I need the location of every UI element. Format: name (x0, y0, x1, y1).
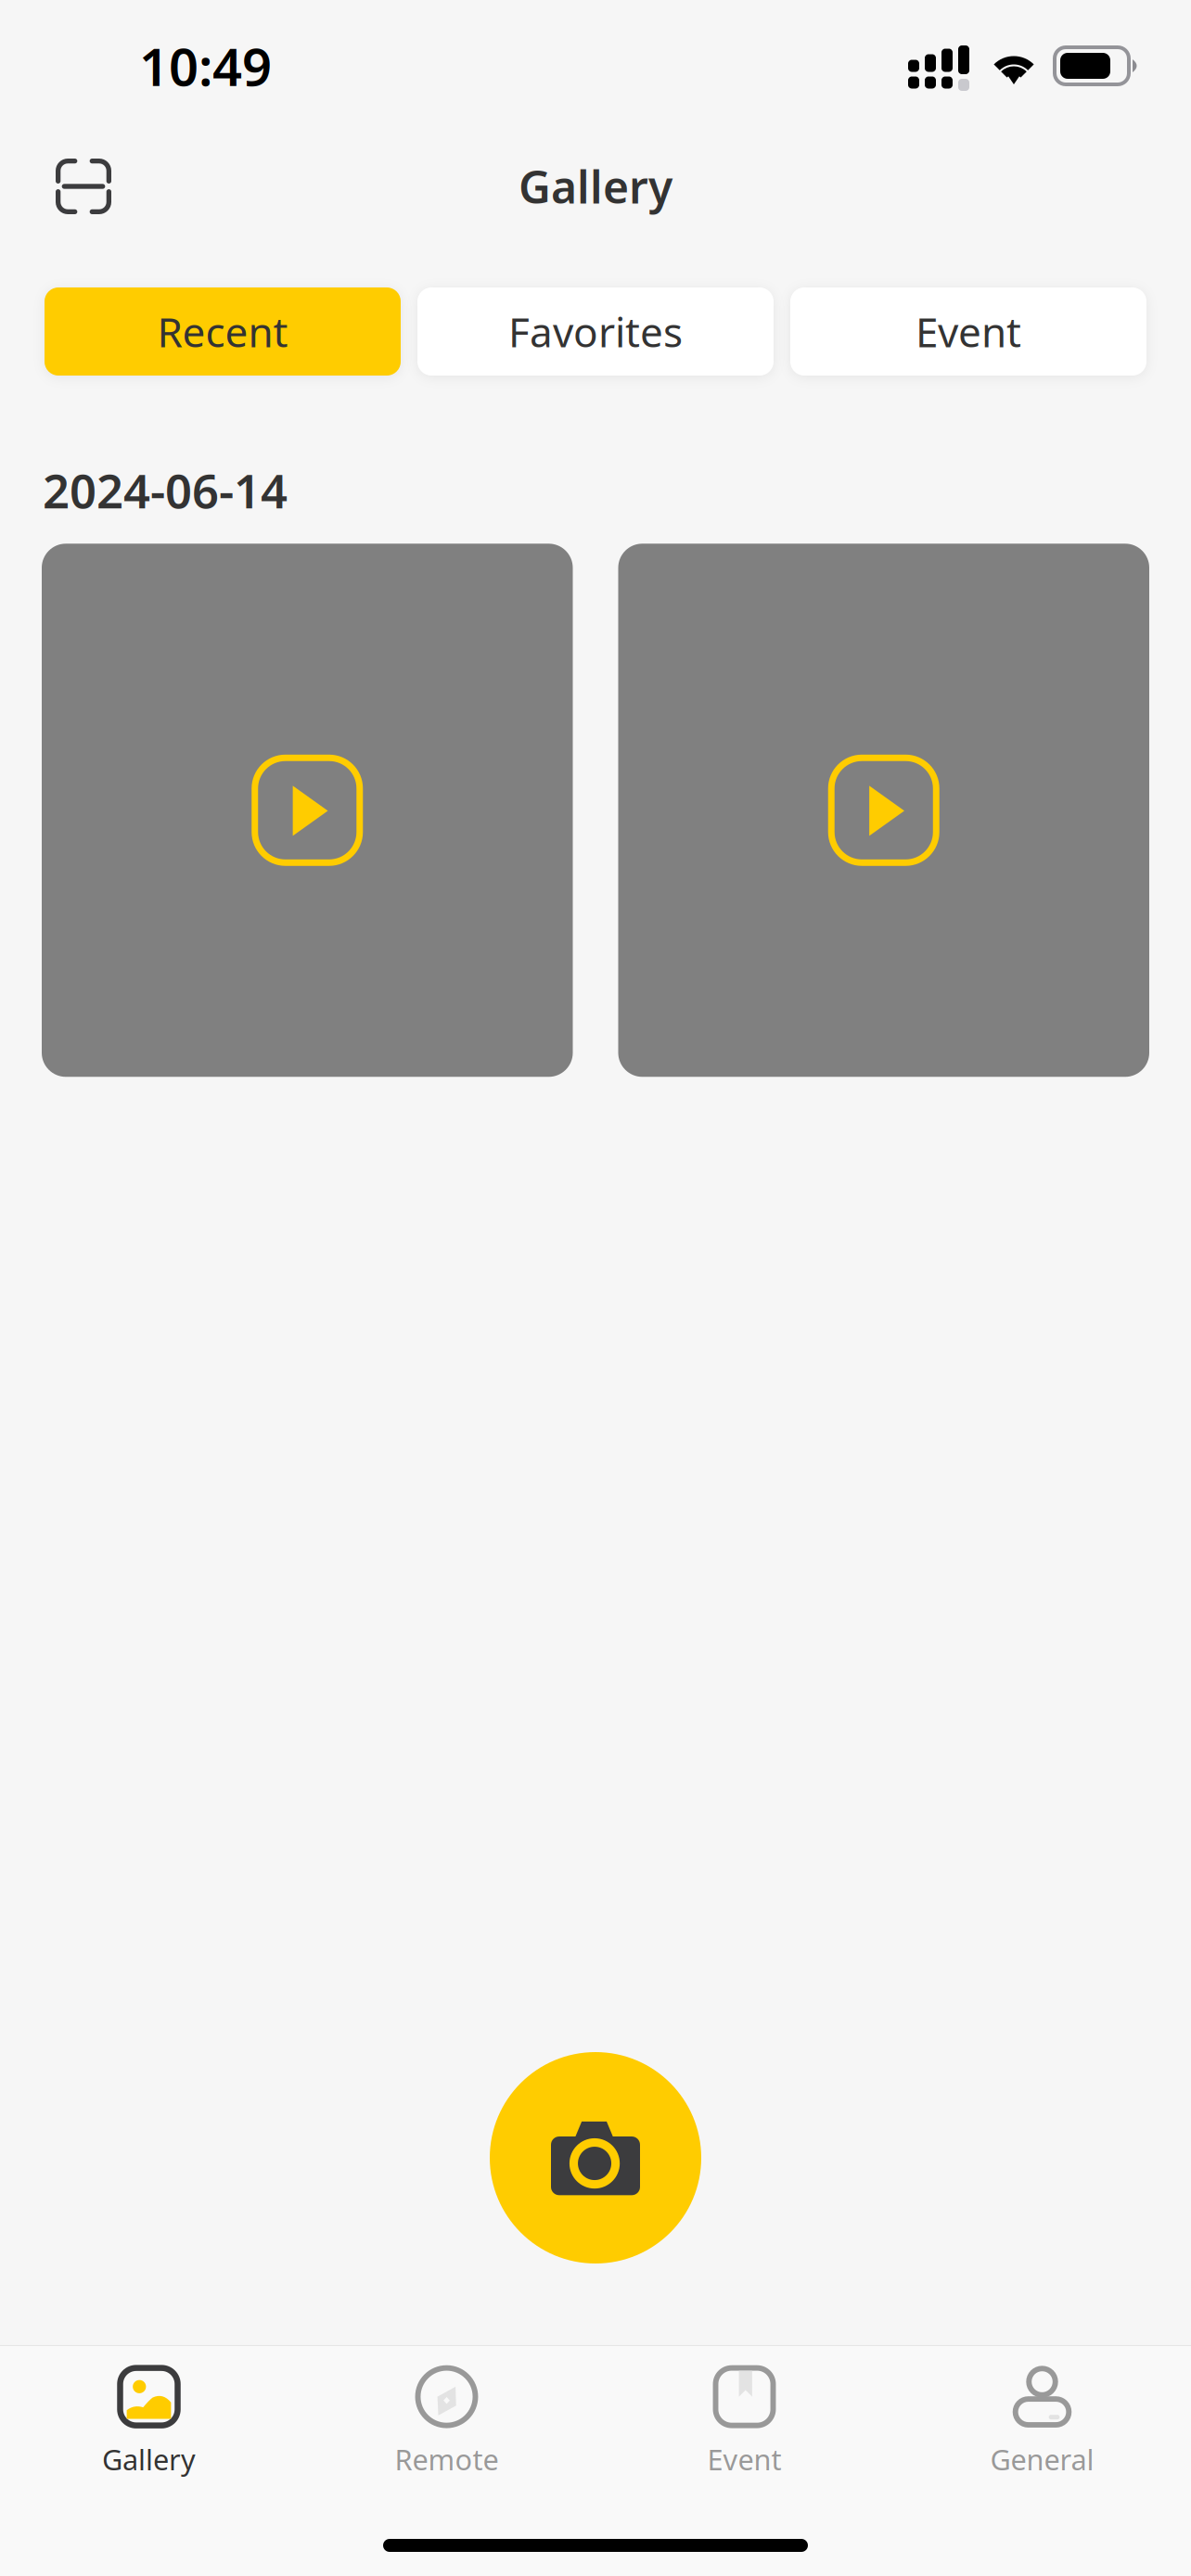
button[interactable]: Recent (45, 287, 401, 376)
button[interactable]: Scan (41, 144, 126, 229)
button[interactable]: Play video (42, 544, 573, 1077)
staticText: Gallery (519, 157, 672, 216)
button[interactable]: Remote (298, 2362, 595, 2484)
staticText: 10:49 (139, 31, 272, 100)
button[interactable]: Play video (618, 544, 1149, 1077)
staticText: Event (916, 304, 1021, 359)
staticText: Recent (157, 304, 288, 359)
button[interactable]: Favorites (417, 287, 774, 376)
staticText: Favorites (508, 304, 683, 359)
staticText: General (990, 2440, 1094, 2478)
button[interactable]: Event (595, 2362, 893, 2484)
staticText: Event (707, 2440, 781, 2478)
button[interactable]: Take photo (490, 2052, 701, 2264)
staticText: Gallery (102, 2440, 196, 2478)
staticText: Remote (395, 2440, 499, 2478)
staticText: 2024-06-14 (43, 459, 288, 521)
button[interactable]: Event (790, 287, 1146, 376)
button[interactable]: Gallery (0, 2362, 298, 2484)
button[interactable]: General (893, 2362, 1191, 2484)
